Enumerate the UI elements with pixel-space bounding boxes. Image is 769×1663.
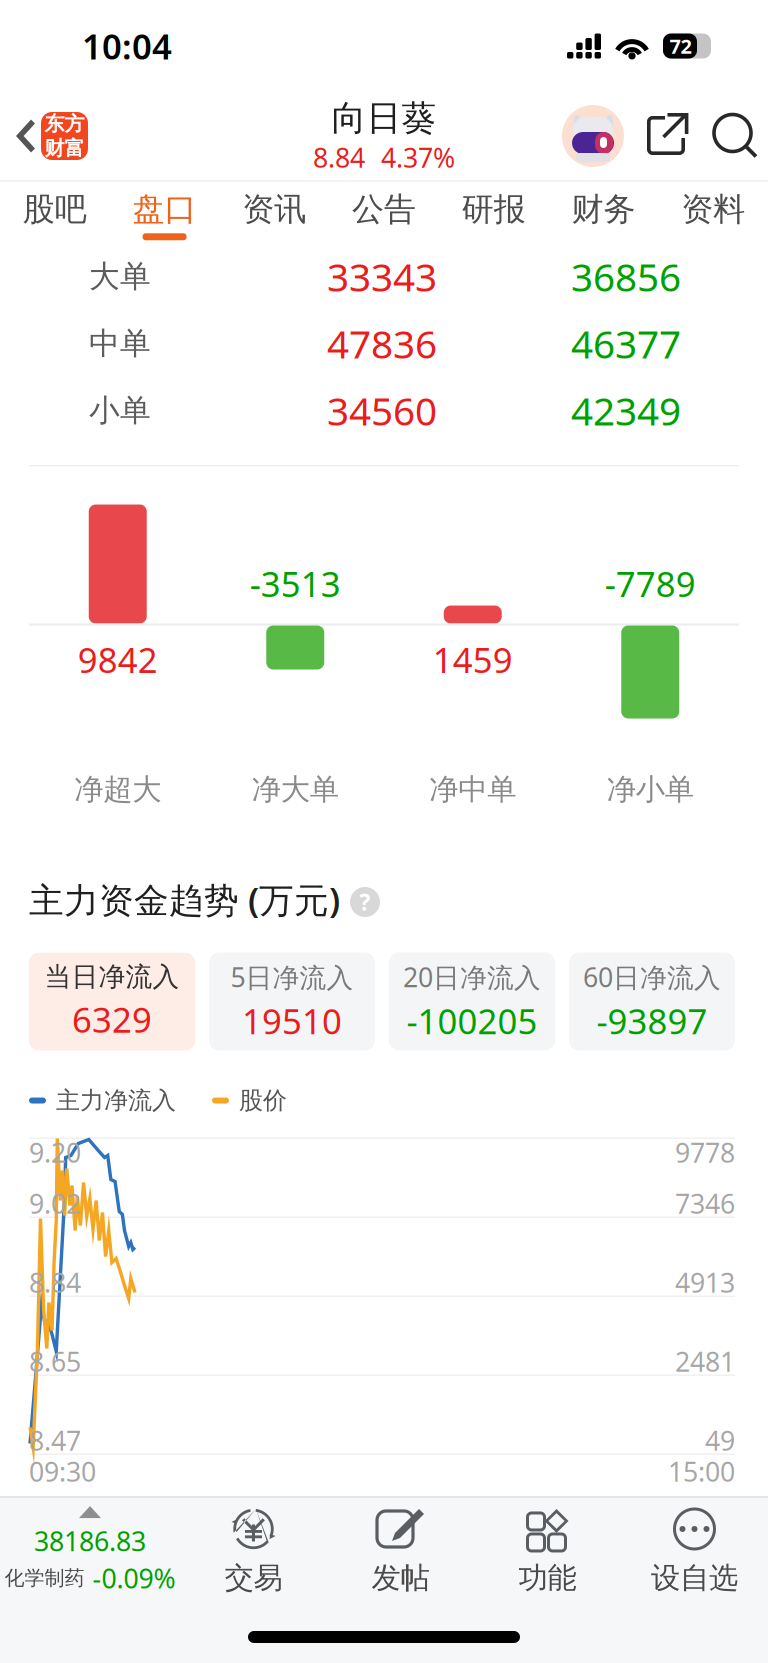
staticText: 公告: [352, 190, 416, 229]
staticText: 中单: [89, 325, 151, 362]
staticText: 60日净流入: [583, 959, 721, 995]
staticText: 2481: [675, 1344, 735, 1379]
staticText: 净中单: [429, 771, 516, 807]
staticText: 交易: [224, 1560, 282, 1596]
button[interactable]: Share: [624, 113, 687, 159]
button[interactable]: 资讯: [219, 184, 329, 240]
staticText: 财富: [44, 136, 84, 161]
staticText: 6329: [72, 996, 152, 1042]
staticText: -3513: [250, 560, 341, 606]
staticText: ?: [359, 887, 370, 917]
staticText: 4.37%: [381, 140, 455, 175]
button[interactable]: 发帖: [327, 1499, 474, 1603]
staticText: 净小单: [607, 771, 694, 807]
staticText: 设自选: [651, 1560, 738, 1596]
staticText: 化学制药: [4, 1566, 84, 1590]
button[interactable]: 5日净流入: [209, 952, 375, 1050]
button[interactable]: 盘口: [110, 184, 219, 240]
staticText: 38186.83: [34, 1523, 146, 1558]
staticText: 47836: [327, 318, 437, 369]
staticText: 42349: [571, 385, 681, 436]
button[interactable]: 资料: [658, 184, 768, 240]
staticText: 9842: [78, 636, 158, 682]
staticText: 9.20: [29, 1135, 81, 1170]
staticText: 当日净流入: [44, 961, 179, 993]
button[interactable]: 财务: [549, 184, 658, 240]
staticText: 净大单: [252, 771, 339, 807]
staticText: 15:00: [668, 1454, 735, 1489]
staticText: 向日葵: [331, 97, 436, 140]
staticText: 8.84: [313, 140, 365, 175]
staticText: 33343: [327, 251, 437, 302]
staticText: 研报: [462, 190, 526, 229]
staticText: 8.84: [29, 1265, 81, 1300]
staticText: 小单: [89, 392, 151, 429]
staticText: 7346: [675, 1186, 735, 1221]
staticText: 股价: [239, 1086, 287, 1115]
staticText: 东方: [44, 111, 84, 136]
staticText: 36856: [571, 251, 681, 302]
staticText: 49: [705, 1423, 735, 1458]
staticText: -7789: [605, 560, 696, 606]
button[interactable]: 20日净流入: [389, 952, 555, 1050]
button[interactable]: 公告: [329, 184, 439, 240]
staticText: 盘口: [133, 190, 197, 229]
button[interactable]: 60日净流入: [569, 952, 735, 1050]
staticText: 34560: [327, 385, 437, 436]
staticText: 财务: [571, 190, 635, 229]
staticText: 9778: [675, 1135, 735, 1170]
staticText: 净超大: [74, 771, 161, 807]
button[interactable]: 股吧: [0, 184, 110, 240]
staticText: 46377: [571, 318, 681, 369]
staticText: 资料: [681, 190, 745, 229]
staticText: 股吧: [23, 190, 87, 229]
staticText: 72: [669, 33, 691, 59]
staticText: 19510: [242, 998, 342, 1044]
button[interactable]: 当日净流入: [29, 952, 195, 1050]
staticText: 主力资金趋势 (万元): [29, 876, 340, 922]
button[interactable]: 38186.83: [0, 1499, 180, 1603]
staticText: 大单: [89, 258, 151, 295]
staticText: 资讯: [242, 190, 306, 229]
staticText: -0.09%: [92, 1560, 175, 1596]
button[interactable]: Back: [0, 112, 96, 160]
staticText: 1459: [433, 636, 513, 682]
button[interactable]: Search: [687, 114, 757, 157]
staticText: 主力净流入: [56, 1086, 176, 1115]
staticText: -100205: [406, 998, 537, 1044]
staticText: 9.02: [29, 1186, 81, 1221]
staticText: 20日净流入: [403, 959, 541, 995]
staticText: 8.47: [29, 1423, 81, 1458]
button[interactable]: AI assistant: [562, 105, 624, 167]
button[interactable]: 研报: [439, 184, 549, 240]
staticText: 09:30: [29, 1454, 96, 1489]
button[interactable]: 设自选: [621, 1499, 768, 1603]
staticText: 5日净流入: [230, 959, 353, 995]
staticText: 发帖: [371, 1560, 429, 1596]
staticText: 8.65: [29, 1344, 81, 1379]
staticText: 4913: [675, 1265, 735, 1300]
staticText: -93897: [596, 998, 707, 1044]
button[interactable]: 功能: [474, 1499, 621, 1603]
staticText: 10:04: [82, 23, 172, 69]
button[interactable]: 交易: [180, 1499, 327, 1603]
staticText: 功能: [518, 1560, 576, 1596]
